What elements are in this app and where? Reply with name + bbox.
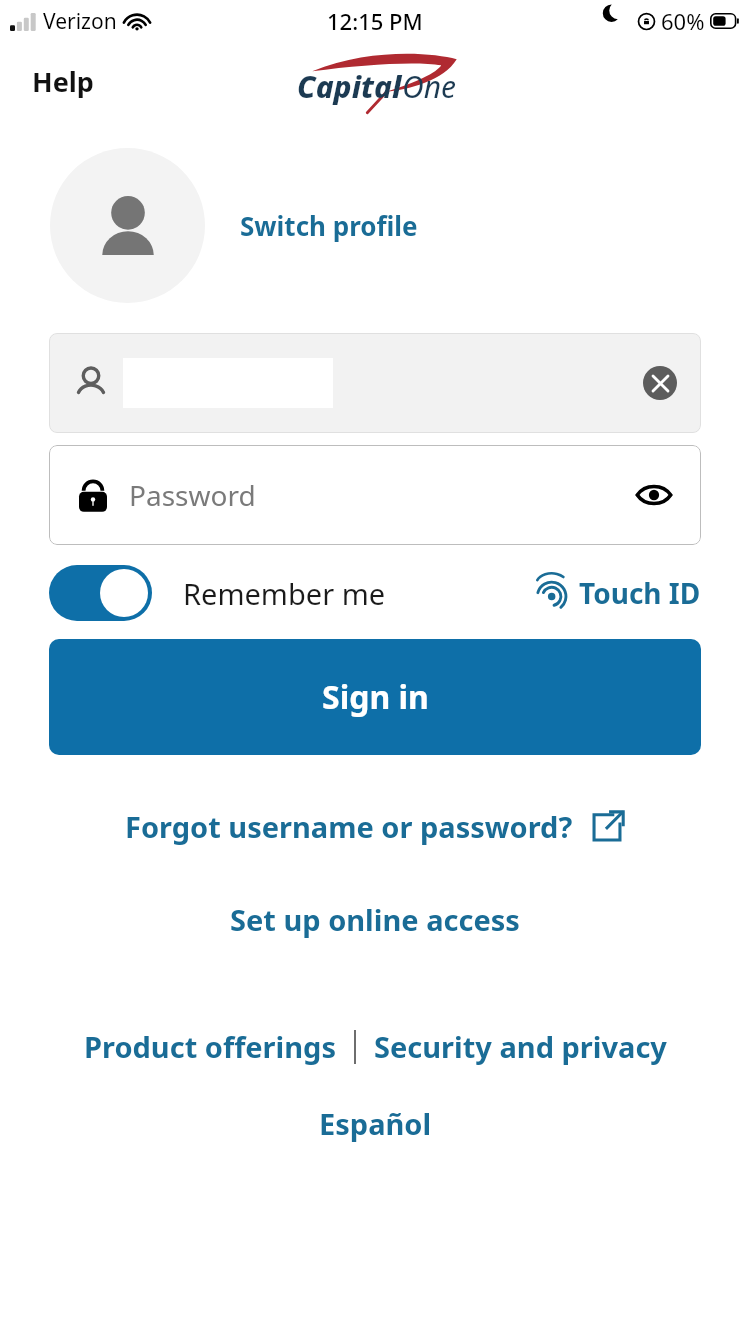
button[interactable]: Remember me toggle (49, 565, 152, 621)
staticText: Español (319, 1104, 432, 1143)
staticText: Password (129, 476, 256, 514)
staticText: 60% (661, 6, 705, 36)
button[interactable]: Switch profile (238, 200, 420, 251)
staticText: Forgot username or password? (125, 807, 573, 846)
button[interactable]: Security and privacy (370, 1019, 671, 1074)
staticText: Remember me (183, 574, 386, 613)
staticText: Set up online access (230, 900, 520, 939)
staticText: Verizon (43, 7, 117, 36)
button[interactable]: Show password (631, 472, 677, 518)
button[interactable]: Password (49, 445, 701, 545)
staticText: One (402, 66, 456, 107)
button[interactable]: Set up online access (220, 892, 530, 947)
button[interactable]: Clear username (49, 333, 701, 433)
button[interactable]: Help (0, 53, 126, 110)
staticText: Touch ID (579, 574, 701, 612)
button[interactable]: Touch ID (534, 568, 701, 618)
staticText: Help (32, 63, 94, 100)
staticText: Sign in (322, 675, 429, 719)
button[interactable]: Español (309, 1096, 442, 1151)
staticText: Product offerings (84, 1027, 336, 1066)
staticText: Switch profile (240, 208, 418, 243)
button[interactable]: Sign in (49, 639, 701, 755)
staticText: Capital (297, 66, 402, 107)
button[interactable]: Profile avatar (50, 148, 205, 303)
staticText: Security and privacy (374, 1027, 667, 1066)
staticText: 12:15 PM (327, 6, 423, 36)
button[interactable]: Product offerings (80, 1019, 340, 1074)
button[interactable]: Forgot username or password? (115, 799, 635, 854)
button[interactable]: Clear username (643, 366, 677, 400)
